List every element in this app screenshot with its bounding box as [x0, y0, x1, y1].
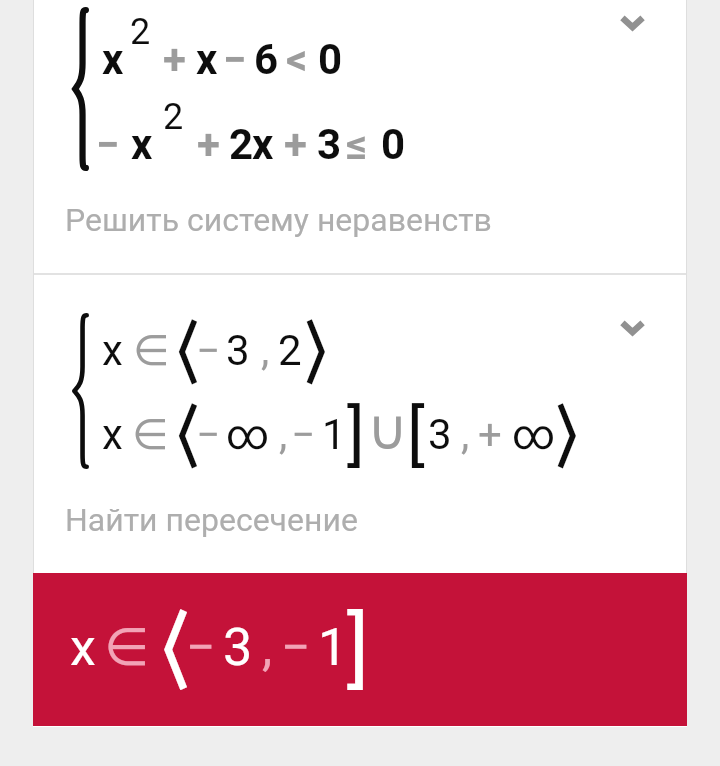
- staticText: ∈: [132, 410, 169, 459]
- staticText: x: [131, 120, 153, 169]
- staticText: +: [163, 35, 186, 84]
- staticText: 0: [381, 120, 406, 169]
- staticText: ⟩: [554, 396, 578, 475]
- staticText: 2: [130, 11, 151, 53]
- staticText: −: [223, 35, 247, 84]
- staticText: [: [407, 396, 425, 475]
- staticText: Решить систему неравенств: [65, 201, 492, 239]
- staticText: ∪: [367, 397, 408, 462]
- staticText: ≤: [346, 120, 368, 169]
- staticText: +: [197, 120, 220, 169]
- staticText: −: [196, 410, 221, 459]
- staticText: ]: [347, 396, 365, 475]
- button[interactable]: x: [33, 0, 687, 272]
- staticText: 3: [226, 326, 250, 375]
- staticText: ∞: [512, 410, 556, 459]
- staticText: 6: [254, 35, 279, 84]
- staticText: x: [102, 326, 123, 375]
- staticText: <: [286, 35, 308, 84]
- staticText: ∞: [226, 410, 270, 459]
- staticText: x: [102, 35, 124, 84]
- staticText: x: [196, 35, 218, 84]
- staticText: ,: [261, 326, 270, 375]
- staticText: ]: [347, 600, 370, 697]
- staticText: ⟨: [177, 312, 201, 391]
- staticText: 3: [223, 617, 253, 678]
- staticText: −: [186, 617, 216, 678]
- other: Collapse step: [609, 305, 655, 351]
- staticText: −: [291, 410, 316, 459]
- staticText: 2: [229, 120, 254, 169]
- staticText: +: [478, 410, 502, 459]
- staticText: 1: [322, 410, 346, 459]
- other: Collapse problem: [609, 0, 655, 46]
- staticText: −: [196, 326, 221, 375]
- staticText: x: [102, 410, 123, 459]
- staticText: ,: [279, 410, 288, 459]
- staticText: 2: [163, 96, 184, 138]
- staticText: +: [284, 120, 307, 169]
- staticText: x: [70, 617, 96, 678]
- staticText: ∈: [104, 617, 150, 678]
- staticText: ,: [262, 617, 273, 678]
- staticText: 1: [318, 617, 348, 678]
- staticText: Найти пересечение: [65, 501, 358, 539]
- staticText: ⟨: [162, 600, 192, 697]
- button[interactable]: x: [33, 273, 687, 573]
- staticText: −: [281, 617, 311, 678]
- staticText: x: [252, 120, 274, 169]
- button[interactable]: x: [33, 573, 687, 726]
- staticText: −: [96, 120, 120, 169]
- staticText: ∈: [133, 326, 170, 375]
- staticText: 3: [317, 120, 342, 169]
- staticText: 3: [428, 410, 452, 459]
- staticText: ,: [461, 410, 470, 459]
- staticText: 2: [278, 326, 302, 375]
- staticText: ⟩: [303, 312, 327, 391]
- staticText: 0: [318, 35, 343, 84]
- staticText: ⟨: [177, 396, 201, 475]
